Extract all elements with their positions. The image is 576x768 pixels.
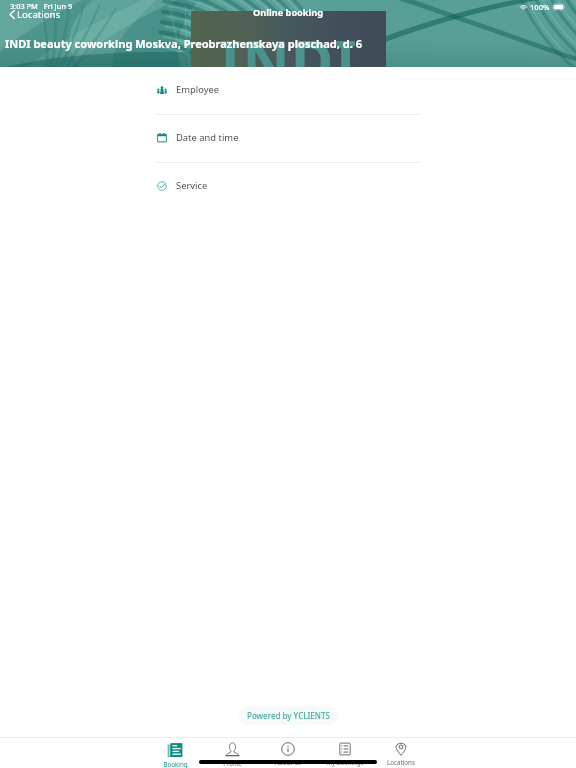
button[interactable]: Date and time — [156, 115, 420, 162]
button[interactable]: Locations — [373, 738, 429, 766]
button[interactable]: Employee — [156, 67, 420, 114]
staticText: My bookings — [326, 758, 364, 766]
staticText: INDI — [219, 20, 358, 67]
staticText: Online booking — [253, 6, 324, 19]
staticText: Locations — [387, 758, 415, 766]
button[interactable]: Booking — [147, 738, 203, 768]
staticText: Locations — [17, 8, 61, 21]
button[interactable]: Powered by YCLIENTS — [239, 706, 338, 725]
staticText: INDI beauty coworking Moskva, Preobrazhe… — [5, 36, 362, 51]
staticText: Profile — [223, 759, 242, 767]
staticText: About us — [275, 758, 301, 766]
staticText: 3:03 PM Fri Jun 9 — [10, 1, 73, 11]
button[interactable]: Back to Locations — [9, 8, 61, 21]
staticText: Employee — [176, 83, 220, 96]
staticText: Powered by YCLIENTS — [247, 710, 330, 721]
button[interactable]: About us — [260, 738, 316, 766]
staticText: 100% — [530, 2, 550, 12]
button[interactable]: My bookings — [317, 738, 373, 766]
staticText: Service — [176, 179, 208, 192]
staticText: Date and time — [176, 131, 239, 144]
button[interactable]: Service — [156, 163, 420, 210]
button[interactable]: Profile — [204, 738, 260, 767]
staticText: Booking — [163, 760, 188, 768]
